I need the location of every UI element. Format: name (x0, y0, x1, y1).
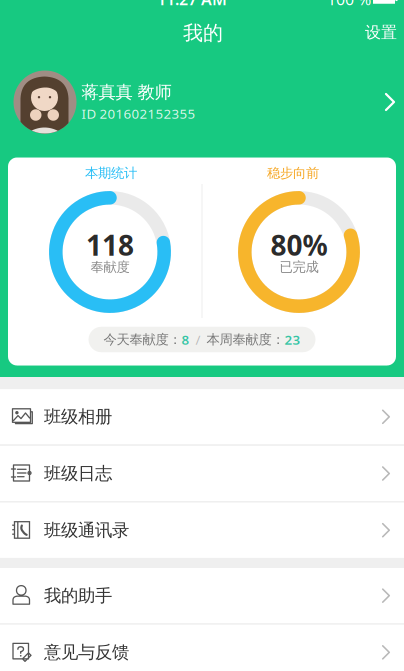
button[interactable]: 蒋真真 教师 (0, 62, 404, 142)
staticText: ID 201602152355 (81, 105, 195, 122)
staticText: 8 (181, 331, 189, 348)
staticText: 班级相册 (44, 406, 112, 427)
staticText: 奉献度 (90, 259, 129, 275)
staticText: 设置 (365, 23, 397, 42)
button[interactable]: 班级相册 (0, 389, 404, 444)
staticText: 11:27 AM (157, 0, 227, 10)
button[interactable]: 设置 (351, 12, 404, 52)
staticText: 稳步向前 (267, 165, 319, 181)
staticText: 我的助手 (44, 585, 112, 606)
staticText: 本期统计 (85, 165, 137, 181)
staticText: 118 (86, 226, 134, 264)
staticText: 班级通讯录 (44, 520, 129, 541)
button[interactable]: 班级通讯录 (0, 502, 404, 558)
staticText: 本周奉献度： (206, 331, 284, 348)
staticText: 80% (270, 226, 327, 264)
staticText: 班级日志 (44, 463, 112, 484)
button[interactable]: 我的助手 (0, 568, 404, 623)
staticText: 意见与反馈 (44, 642, 129, 663)
staticText: 23 (284, 331, 300, 348)
staticText: 100 % (327, 0, 371, 10)
staticText: 已完成 (279, 259, 318, 275)
button[interactable]: 意见与反馈 (0, 625, 404, 671)
button[interactable]: 班级日志 (0, 446, 404, 501)
staticText: 我的 (183, 21, 223, 45)
staticText: 蒋真真 教师 (81, 81, 171, 103)
staticText: / (189, 331, 206, 348)
staticText: 今天奉献度： (103, 331, 181, 348)
